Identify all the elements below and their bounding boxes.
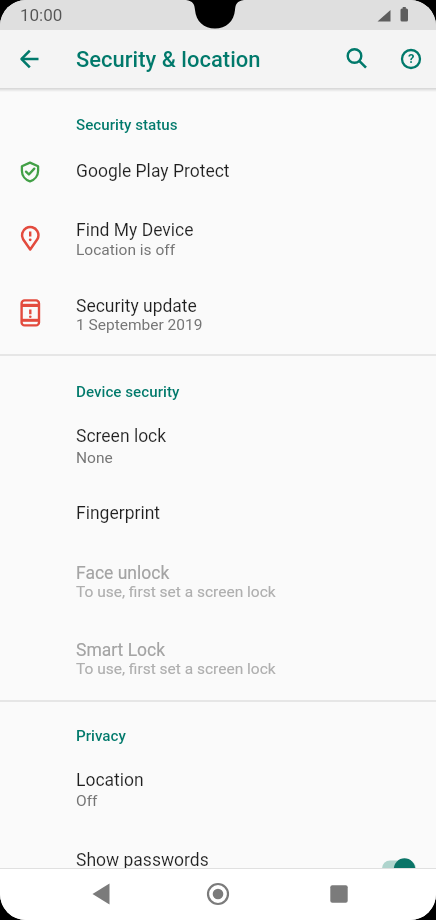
staticText: Location xyxy=(76,770,144,791)
button[interactable]: Google Play Protect xyxy=(0,138,436,206)
staticText: Location is off xyxy=(76,241,176,259)
staticText: Security & location xyxy=(76,47,261,73)
button[interactable] xyxy=(315,870,363,918)
staticText: Fingerprint xyxy=(76,503,161,524)
staticText: Smart Lock xyxy=(76,640,166,661)
button[interactable]: Show passwords xyxy=(0,838,436,869)
staticText: Security update xyxy=(76,296,197,317)
button[interactable]: Screen lock xyxy=(0,412,436,480)
staticText: Screen lock xyxy=(76,426,167,447)
staticText: Google Play Protect xyxy=(76,161,230,182)
button[interactable]: Face unlock xyxy=(0,550,436,612)
staticText: ? xyxy=(408,51,415,66)
staticText: 1 September 2019 xyxy=(76,316,203,334)
button[interactable] xyxy=(80,870,128,918)
button[interactable]: Smart Lock xyxy=(0,627,436,693)
button[interactable] xyxy=(332,34,380,82)
button[interactable]: Find My Device xyxy=(0,206,436,278)
staticText: Security status xyxy=(76,116,178,134)
staticText: Device security xyxy=(76,383,180,401)
staticText: Off xyxy=(76,792,98,810)
staticText: 10:00 xyxy=(20,5,63,25)
staticText: Privacy xyxy=(76,727,126,745)
button[interactable] xyxy=(194,870,242,918)
button[interactable]: ? xyxy=(387,35,435,83)
button[interactable]: Security update xyxy=(0,281,436,352)
staticText: Find My Device xyxy=(76,220,194,241)
staticText: None xyxy=(76,449,113,467)
button[interactable]: Location xyxy=(0,760,436,822)
staticText: To use, first set a screen lock xyxy=(76,583,276,601)
button[interactable] xyxy=(6,35,54,83)
staticText: Face unlock xyxy=(76,563,170,584)
staticText: Show passwords xyxy=(76,850,209,871)
staticText: To use, first set a screen lock xyxy=(76,660,276,678)
button[interactable]: Fingerprint xyxy=(0,485,436,545)
